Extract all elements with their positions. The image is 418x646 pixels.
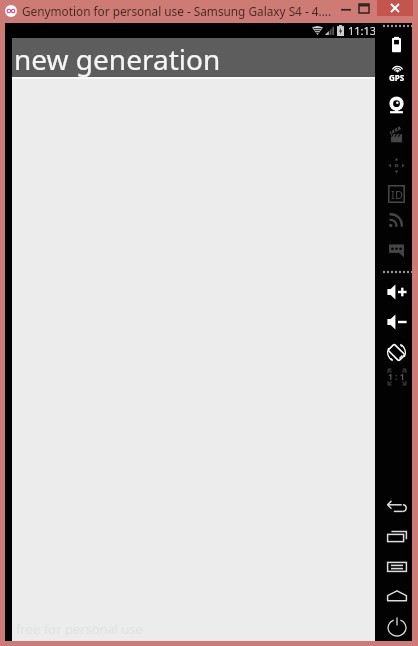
button[interactable]: Recents bbox=[378, 525, 415, 551]
button[interactable]: Menu bbox=[378, 556, 415, 582]
staticText: 1 : 1 bbox=[388, 371, 405, 383]
button[interactable]: Minimize bbox=[331, 0, 361, 16]
button[interactable]: Identifiers bbox=[378, 181, 415, 207]
button[interactable]: Messaging bbox=[378, 236, 415, 262]
button[interactable]: Back bbox=[378, 496, 415, 522]
button[interactable]: Home bbox=[378, 583, 415, 609]
staticText: new generation bbox=[14, 40, 221, 78]
button[interactable]: Close bbox=[377, 0, 413, 16]
button[interactable]: Dpad bbox=[378, 152, 415, 178]
button[interactable]: Scale 1:1 bbox=[378, 364, 415, 390]
button[interactable]: Volume down bbox=[378, 309, 415, 335]
button[interactable]: Battery bbox=[378, 31, 415, 57]
button[interactable]: Power bbox=[378, 613, 415, 639]
button[interactable]: Maximize bbox=[351, 0, 377, 16]
button[interactable]: Video bbox=[378, 122, 415, 148]
staticText: ID bbox=[391, 187, 403, 202]
staticText: GPS bbox=[389, 72, 405, 83]
button[interactable]: Network bbox=[378, 206, 415, 232]
button[interactable]: GPS bbox=[378, 60, 415, 86]
button[interactable]: Rotate bbox=[378, 339, 415, 365]
button[interactable]: Volume up bbox=[378, 279, 415, 305]
button[interactable]: Camera bbox=[378, 92, 415, 118]
staticText: Genymotion for personal use - Samsung Ga… bbox=[22, 3, 332, 19]
button[interactable]: new generation bbox=[12, 38, 375, 78]
staticText: 11:13 bbox=[348, 23, 377, 37]
